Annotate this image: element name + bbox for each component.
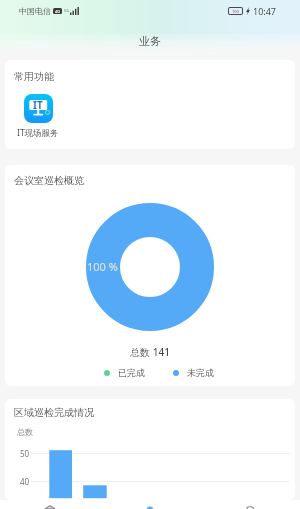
staticText: 常用功能 (14, 70, 54, 83)
button[interactable]: 首页 (0, 500, 100, 509)
staticText: 100 (232, 9, 239, 14)
staticText: 已完成 (118, 367, 145, 378)
staticText: 业务 (139, 34, 161, 48)
staticText: 100 % (87, 259, 118, 274)
staticText: 5G (64, 8, 70, 13)
staticText: 4G (55, 9, 61, 14)
staticText: 未完成 (187, 367, 214, 378)
staticText: 10:47 (253, 5, 277, 17)
staticText: 总数 (17, 427, 33, 437)
button[interactable]: 未完成 (173, 367, 214, 378)
button[interactable]: 业务 (100, 500, 200, 509)
button[interactable]: 我的 (200, 500, 300, 509)
staticText: 总数 141 (5, 345, 295, 359)
staticText: IT现场服务 (17, 127, 59, 139)
staticText: 区域巡检完成情况 (14, 406, 94, 419)
button[interactable]: IT (17, 94, 59, 139)
staticText: IT (33, 98, 43, 112)
staticText: 40 (20, 476, 30, 487)
staticText: 50 (20, 448, 30, 459)
button[interactable]: 已完成 (104, 367, 145, 378)
staticText: 会议室巡检概览 (14, 174, 84, 187)
staticText: 中国电信 (19, 6, 51, 16)
